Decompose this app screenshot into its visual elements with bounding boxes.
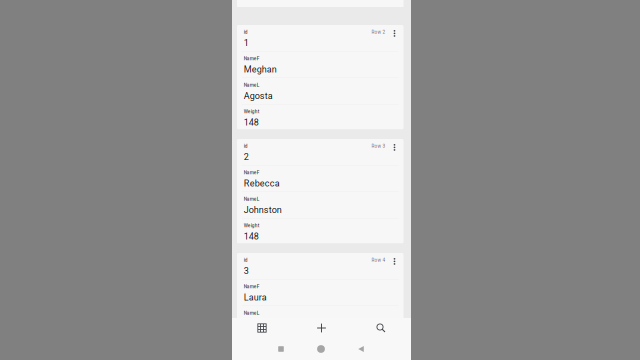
staticText: Row 2 — [371, 29, 385, 35]
button[interactable]: id — [237, 253, 403, 357]
button[interactable]: More options — [389, 30, 400, 39]
staticText: Weight — [244, 223, 260, 228]
staticText: Meghan — [244, 64, 277, 75]
button[interactable]: id — [237, 25, 403, 129]
staticText: NameF — [244, 56, 260, 61]
staticText: Johnston — [244, 205, 282, 215]
button[interactable]: More options — [389, 144, 400, 153]
button[interactable]: Back — [341, 338, 381, 360]
staticText: id — [244, 29, 248, 35]
button[interactable]: Home — [301, 338, 341, 360]
staticText: 2 — [244, 152, 249, 162]
staticText: Row 4 — [371, 257, 385, 263]
button[interactable]: Recent apps — [261, 338, 301, 360]
staticText: NameL — [244, 310, 260, 316]
staticText: NameF — [244, 284, 260, 289]
staticText: NameF — [244, 170, 260, 175]
button[interactable]: More options — [389, 258, 400, 267]
button[interactable]: Add record — [292, 317, 351, 338]
staticText: Row 3 — [371, 143, 385, 149]
staticText: NameL — [244, 82, 260, 88]
staticText: 3 — [244, 266, 249, 276]
staticText: Rebecca — [244, 178, 280, 189]
button[interactable]: Search — [351, 317, 411, 338]
staticText: 1 — [244, 38, 249, 48]
staticText: Agosta — [244, 91, 273, 101]
staticText: id — [244, 257, 248, 263]
button[interactable]: id — [237, 139, 403, 243]
staticText: NameL — [244, 196, 260, 202]
staticText: id — [244, 143, 248, 149]
button[interactable]: Table view — [232, 317, 292, 338]
staticText: 148 — [244, 231, 259, 242]
staticText: Fortino — [244, 319, 272, 329]
staticText: Weight — [244, 109, 260, 114]
staticText: 148 — [244, 117, 259, 128]
staticText: Laura — [244, 292, 267, 303]
